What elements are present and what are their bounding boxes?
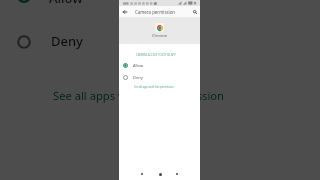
button[interactable]: Home xyxy=(156,170,164,178)
button[interactable]: Back xyxy=(120,7,129,16)
staticText: Allow xyxy=(49,0,83,7)
staticText: CAMERA ACCESS FOR THIS APP xyxy=(136,53,176,57)
staticText: Allow xyxy=(133,63,144,68)
button[interactable]: See all apps with this permission xyxy=(131,84,177,90)
button[interactable]: Recents xyxy=(173,170,181,178)
button[interactable]: Back xyxy=(138,170,146,178)
staticText: See all apps with this permission xyxy=(53,88,225,103)
staticText: Deny xyxy=(51,32,83,50)
staticText: Camera permission xyxy=(135,9,176,15)
staticText: Deny xyxy=(133,75,143,80)
button[interactable]: Deny xyxy=(119,71,200,83)
staticText: See all apps with this permission xyxy=(134,85,174,89)
button[interactable]: Allow xyxy=(119,59,200,71)
staticText: Chrome xyxy=(152,33,167,38)
button[interactable]: Search xyxy=(190,7,199,16)
